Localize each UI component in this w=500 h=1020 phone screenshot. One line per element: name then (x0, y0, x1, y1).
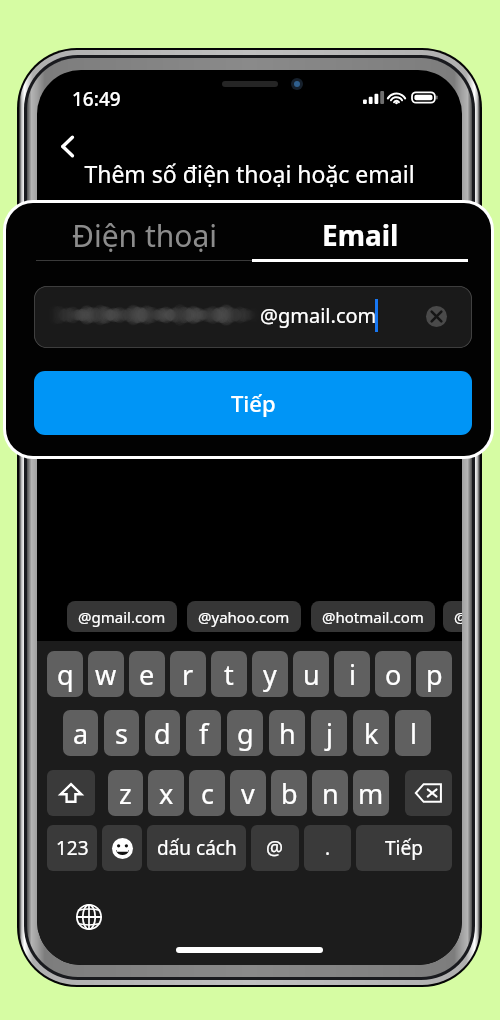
button[interactable]: Clear text (421, 301, 452, 332)
staticText: y (263, 656, 277, 693)
button[interactable]: g (227, 710, 263, 756)
button[interactable]: f (186, 710, 221, 756)
button[interactable]: 123 (47, 825, 97, 871)
staticText: f (199, 715, 209, 752)
button[interactable]: o (375, 651, 411, 697)
button[interactable]: Back (47, 126, 87, 166)
staticText: h (279, 715, 296, 752)
button[interactable]: e (129, 651, 165, 697)
button[interactable]: Shift (47, 770, 95, 816)
staticText: q (57, 656, 74, 693)
button[interactable]: t (211, 651, 247, 697)
button[interactable]: Backspace (405, 770, 452, 816)
staticText: u (303, 656, 320, 693)
button[interactable]: c (189, 770, 225, 816)
staticText: Thêm số điện thoại hoặc email (37, 158, 462, 189)
button[interactable]: @gmail.com (34, 286, 472, 348)
staticText: v (241, 775, 255, 812)
staticText: Tiếp (231, 388, 276, 418)
staticText: @yahoo.com (198, 607, 290, 627)
staticText: dấu cách (157, 835, 237, 861)
staticText: d (154, 715, 171, 752)
staticText: a (73, 715, 89, 752)
staticText: g (237, 715, 254, 752)
staticText: x (159, 775, 174, 812)
button[interactable]: x (148, 770, 184, 816)
staticText: @gmail.com (78, 607, 166, 627)
button[interactable]: Tiếp (356, 825, 452, 871)
button[interactable]: i (334, 651, 370, 697)
button[interactable]: @o (443, 601, 462, 632)
button[interactable]: u (293, 651, 329, 697)
button[interactable]: Email (252, 209, 468, 261)
button[interactable]: l (395, 710, 431, 756)
staticText: c (201, 775, 214, 812)
button[interactable]: y (252, 651, 288, 697)
staticText: b (281, 775, 298, 812)
staticText: @o (454, 607, 462, 627)
staticText: k (364, 715, 379, 752)
button[interactable]: m (353, 770, 389, 816)
staticText: e (139, 656, 155, 693)
staticText: Tiếp (385, 835, 423, 861)
staticText: @hotmail.com (322, 607, 424, 627)
staticText: p (426, 656, 443, 693)
button[interactable]: Change keyboard (73, 901, 105, 933)
button[interactable]: Emoji (102, 825, 142, 871)
staticText: n (322, 775, 339, 812)
button[interactable]: . (304, 825, 351, 871)
staticText: . (325, 835, 331, 861)
button[interactable]: w (88, 651, 124, 697)
staticText: j (326, 715, 333, 752)
staticText: r (182, 656, 194, 693)
staticText: Email (322, 216, 399, 254)
button[interactable]: j (311, 710, 347, 756)
button[interactable]: z (108, 770, 143, 816)
staticText: w (95, 656, 117, 693)
button[interactable]: r (170, 651, 206, 697)
staticText: l (410, 715, 417, 752)
button[interactable]: @hotmail.com (311, 601, 435, 632)
staticText: z (119, 775, 132, 812)
button[interactable]: @gmail.com (67, 601, 177, 632)
staticText: 123 (56, 835, 89, 861)
staticText: m (358, 775, 384, 812)
button[interactable]: s (104, 710, 139, 756)
button[interactable]: n (312, 770, 348, 816)
button[interactable]: b (271, 770, 307, 816)
staticText: @gmail.com (260, 302, 377, 329)
staticText: t (224, 656, 234, 693)
button[interactable]: a (63, 710, 98, 756)
staticText: 16:49 (72, 86, 121, 112)
staticText: s (115, 715, 128, 752)
button[interactable]: Điện thoại (36, 209, 252, 261)
button[interactable]: v (230, 770, 266, 816)
staticText: Điện thoại (72, 215, 217, 256)
staticText: @ (266, 835, 284, 861)
button[interactable]: q (47, 651, 83, 697)
button[interactable]: k (353, 710, 389, 756)
button[interactable]: @ (251, 825, 299, 871)
staticText: i (349, 656, 356, 693)
button[interactable]: d (145, 710, 180, 756)
staticText: o (385, 656, 402, 693)
button[interactable]: h (269, 710, 305, 756)
button[interactable]: Tiếp (34, 371, 472, 435)
button[interactable]: dấu cách (147, 825, 246, 871)
button[interactable]: p (416, 651, 452, 697)
button[interactable]: @yahoo.com (187, 601, 301, 632)
